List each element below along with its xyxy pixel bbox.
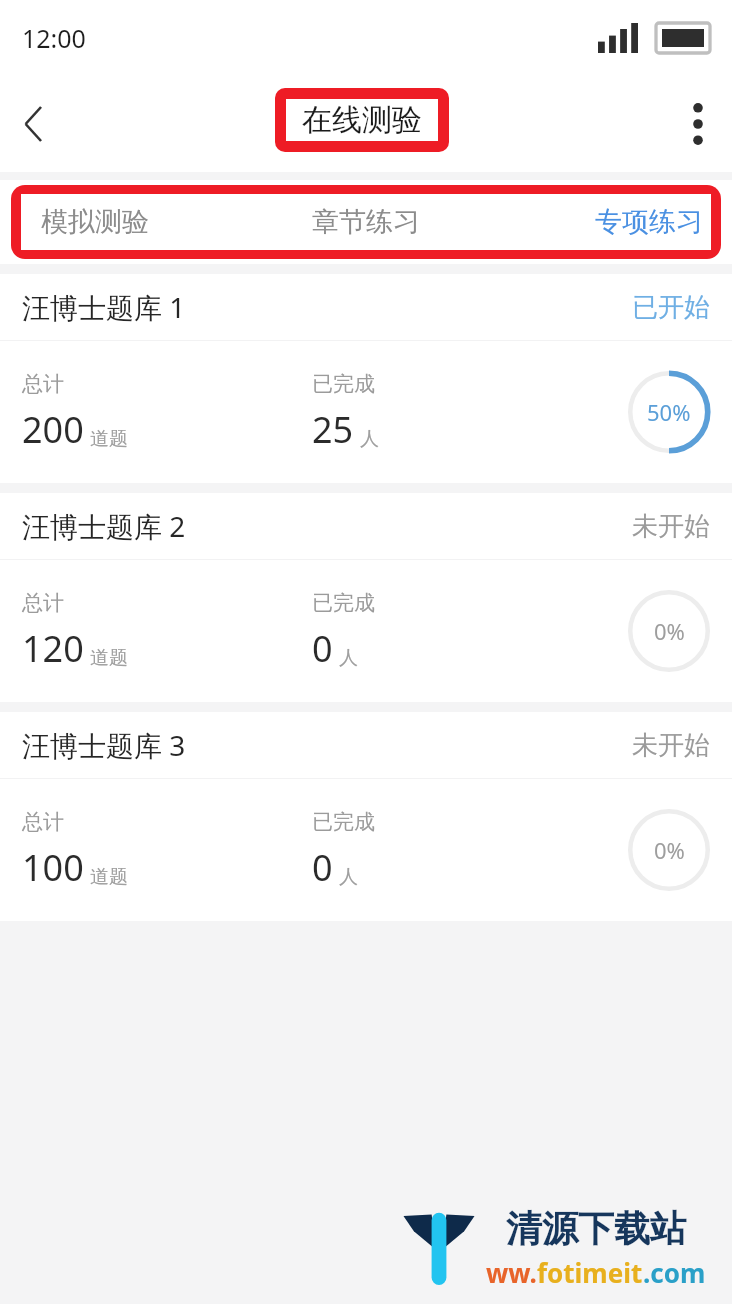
staticText: 清源下载站 [506, 1206, 686, 1251]
button[interactable]: More options [672, 98, 724, 150]
button[interactable]: 章节练习 [251, 194, 481, 250]
button[interactable]: Back [6, 96, 62, 152]
staticText: 道题 [90, 865, 128, 889]
staticText: 模拟测验 [41, 205, 149, 239]
staticText: 未开始 [632, 510, 710, 543]
staticText: .com [643, 1255, 706, 1290]
staticText: 50% [647, 397, 691, 427]
staticText: 人 [360, 427, 379, 451]
staticText: 汪博士题库 3 [22, 726, 186, 764]
staticText: 专项练习 [595, 205, 703, 239]
staticText: 0% [654, 835, 685, 865]
staticText: 未开始 [632, 729, 710, 762]
staticText: 120 [22, 624, 84, 673]
staticText: 已完成 [312, 590, 375, 616]
staticText: 总计 [22, 371, 64, 397]
staticText: 200 [22, 405, 84, 454]
button[interactable]: 汪博士题库 2 [0, 493, 732, 702]
button[interactable]: 专项练习 [481, 194, 711, 250]
staticText: 100 [22, 843, 84, 892]
staticText: 已完成 [312, 809, 375, 835]
button[interactable]: 汪博士题库 1 [0, 274, 732, 483]
staticText: 人 [339, 646, 358, 670]
button[interactable]: 模拟测验 [21, 194, 251, 250]
staticText: 章节练习 [312, 205, 420, 239]
staticText: 汪博士题库 1 [22, 288, 186, 326]
staticText: 道题 [90, 646, 128, 670]
staticText: 汪博士题库 2 [22, 507, 186, 545]
staticText: 0 [312, 843, 333, 892]
staticText: 0% [654, 616, 685, 646]
staticText: 人 [339, 865, 358, 889]
staticText: ww. [486, 1255, 537, 1290]
staticText: 0 [312, 624, 333, 673]
staticText: 在线测验 [302, 101, 422, 139]
staticText: 总计 [22, 590, 64, 616]
button[interactable]: 汪博士题库 3 [0, 712, 732, 921]
staticText: 已完成 [312, 371, 375, 397]
button[interactable]: 在线测验 [286, 99, 438, 141]
staticText: 12:00 [22, 21, 86, 55]
staticText: 总计 [22, 809, 64, 835]
staticText: 已开始 [632, 291, 710, 324]
staticText: fotimeit [537, 1255, 643, 1290]
staticText: 道题 [90, 427, 128, 451]
staticText: 25 [312, 405, 354, 454]
